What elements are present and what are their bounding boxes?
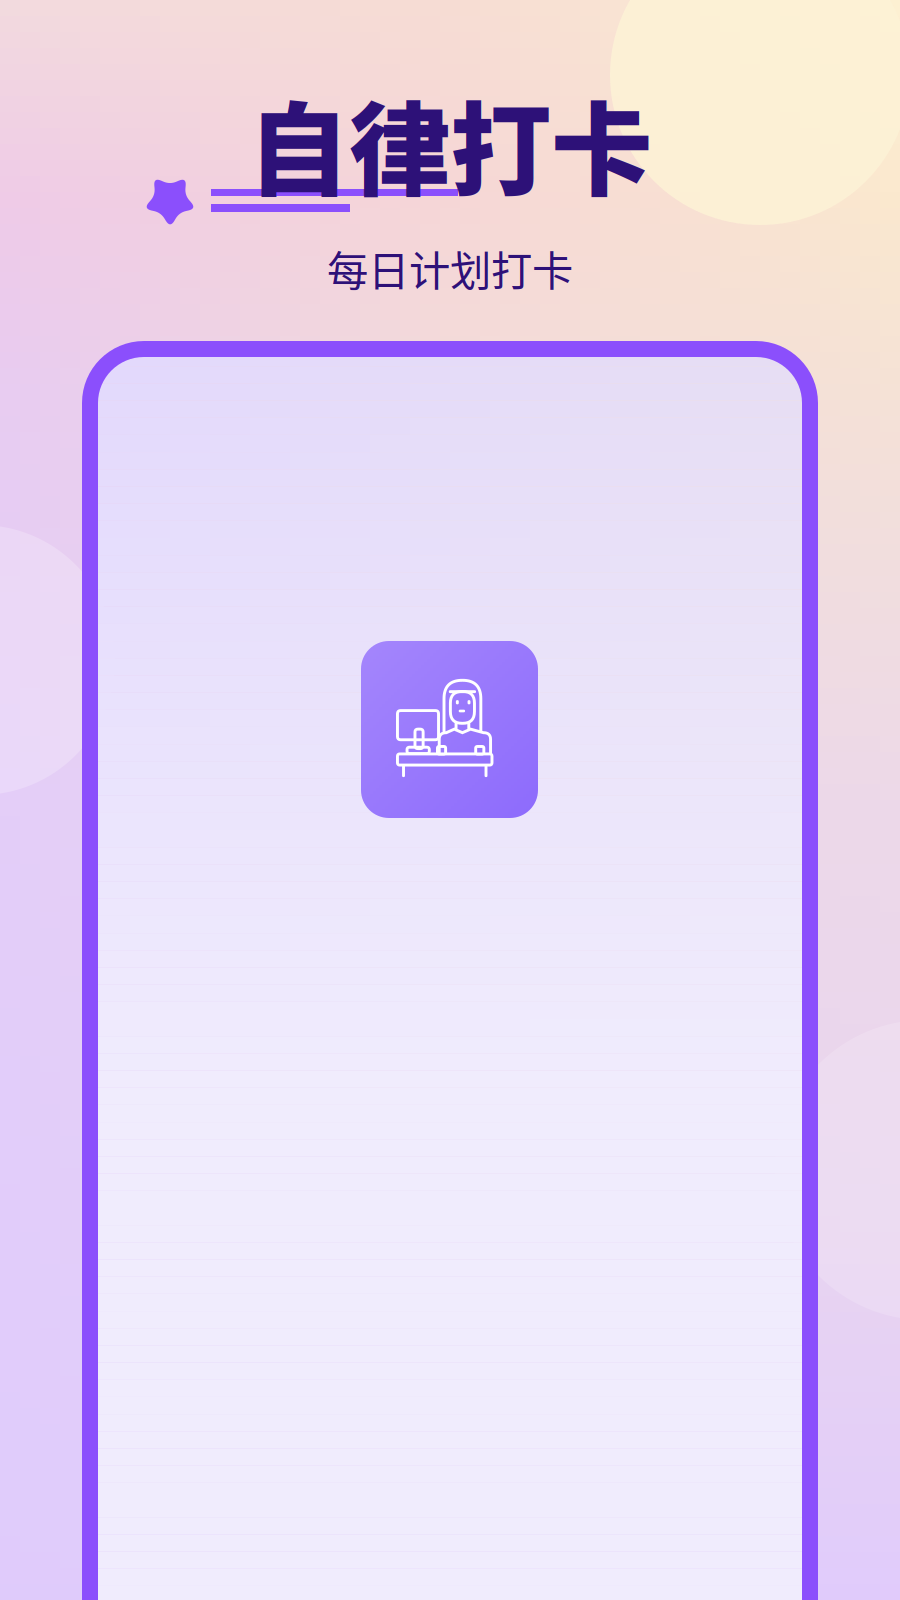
staticText: 每日计划打卡: [327, 238, 573, 298]
button[interactable]: 自律打卡 App: [361, 641, 538, 818]
staticText: 自律打卡: [248, 70, 652, 216]
